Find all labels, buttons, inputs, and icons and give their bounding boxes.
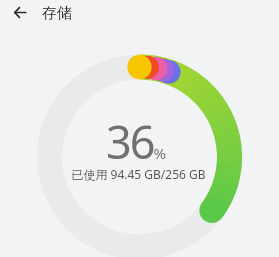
staticText: 36% (106, 111, 166, 172)
button[interactable] (4, 2, 36, 22)
staticText: 存储 (42, 4, 72, 23)
staticText: 已使用 94.45 GB/256 GB (71, 166, 206, 182)
